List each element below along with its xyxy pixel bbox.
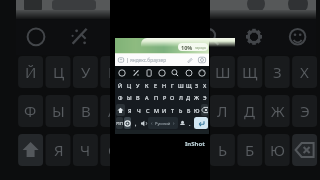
button[interactable]: Emoji bbox=[196, 67, 208, 79]
button[interactable]: Backspace bbox=[201, 104, 208, 116]
staticText: Т bbox=[171, 107, 175, 114]
staticText: Р bbox=[163, 94, 167, 101]
button[interactable]: Ш bbox=[177, 80, 184, 91]
button[interactable]: Я bbox=[126, 104, 134, 116]
staticText: Й bbox=[25, 62, 37, 82]
button[interactable]: Ь bbox=[177, 104, 184, 116]
staticText: У bbox=[136, 82, 140, 89]
staticText: А bbox=[108, 101, 118, 121]
staticText: 10% bbox=[181, 44, 193, 51]
button[interactable]: Б bbox=[185, 104, 192, 116]
staticText: InShot bbox=[185, 140, 205, 148]
staticText: | bbox=[126, 57, 129, 64]
button[interactable]: Е bbox=[152, 80, 160, 91]
staticText: , bbox=[135, 120, 137, 127]
button[interactable]: Р bbox=[161, 92, 168, 103]
staticText: Н bbox=[162, 62, 174, 82]
other: Attach bbox=[186, 57, 193, 64]
button[interactable]: Enter bbox=[194, 117, 208, 129]
button[interactable]: Magic bbox=[130, 67, 142, 79]
staticText: Й bbox=[118, 82, 123, 89]
button[interactable]: Voice assistant bbox=[124, 117, 131, 129]
staticText: Ш bbox=[178, 82, 184, 89]
button[interactable]: Т bbox=[169, 104, 176, 116]
button[interactable]: З bbox=[193, 80, 200, 91]
button[interactable]: Ч bbox=[135, 104, 143, 116]
staticText: В bbox=[81, 101, 91, 121]
button[interactable]: Л bbox=[177, 92, 184, 103]
staticText: Ц bbox=[127, 82, 132, 89]
staticText: Я bbox=[54, 140, 64, 160]
button[interactable]: . bbox=[187, 117, 193, 129]
button[interactable]: Д bbox=[185, 92, 192, 103]
button[interactable]: , bbox=[132, 117, 139, 129]
staticText: Е bbox=[154, 82, 158, 89]
button[interactable]: Ю bbox=[193, 104, 200, 116]
staticText: Щ bbox=[186, 82, 192, 89]
button[interactable]: М bbox=[153, 104, 160, 116]
staticText: Ю bbox=[194, 107, 200, 114]
button[interactable]: Ф bbox=[116, 92, 124, 103]
staticText: яндекс.браузер bbox=[130, 57, 167, 64]
button[interactable]: Language bbox=[140, 117, 147, 129]
staticText: Э bbox=[300, 101, 310, 121]
button[interactable]: О bbox=[169, 92, 176, 103]
button[interactable]: Clipboard bbox=[143, 67, 155, 79]
staticText: Д bbox=[244, 101, 255, 121]
staticText: Н bbox=[162, 82, 167, 89]
staticText: Б bbox=[245, 140, 255, 160]
staticText: Б bbox=[187, 107, 191, 114]
staticText: Т bbox=[191, 140, 200, 160]
staticText: Р bbox=[163, 101, 173, 121]
staticText: Щ bbox=[242, 62, 258, 82]
button[interactable]: П bbox=[152, 92, 160, 103]
button[interactable]: ‹ bbox=[148, 117, 178, 129]
staticText: Ы bbox=[52, 101, 65, 121]
button[interactable]: С bbox=[144, 104, 152, 116]
button[interactable]: Щ bbox=[185, 80, 192, 91]
button[interactable]: И bbox=[161, 104, 168, 116]
other: Tabs bbox=[118, 57, 124, 63]
staticText: заряда bbox=[195, 46, 206, 50]
staticText: Ь bbox=[179, 107, 183, 114]
staticText: Э bbox=[203, 94, 207, 101]
button[interactable]: Translate bbox=[156, 67, 168, 79]
staticText: О bbox=[190, 101, 202, 121]
button[interactable]: Г bbox=[169, 80, 176, 91]
staticText: Ц bbox=[53, 62, 65, 82]
button[interactable]: Ж bbox=[193, 92, 200, 103]
button[interactable]: В bbox=[134, 92, 142, 103]
button[interactable]: Ы bbox=[125, 92, 133, 103]
button[interactable]: Х bbox=[201, 80, 208, 91]
staticText: С bbox=[108, 140, 118, 160]
staticText: Ю bbox=[270, 140, 285, 160]
staticText: Л bbox=[217, 101, 228, 121]
button[interactable]: Ц bbox=[125, 80, 133, 91]
staticText: Х bbox=[300, 62, 309, 82]
button[interactable]: Search bbox=[169, 67, 181, 79]
button[interactable]: А bbox=[143, 92, 151, 103]
staticText: Ч bbox=[80, 140, 91, 160]
staticText: К bbox=[145, 82, 149, 89]
staticText: И bbox=[162, 107, 167, 114]
staticText: Х bbox=[203, 82, 207, 89]
staticText: Ч bbox=[137, 107, 141, 114]
button[interactable]: Й bbox=[116, 80, 124, 91]
button[interactable]: К bbox=[143, 80, 151, 91]
staticText: Л bbox=[179, 94, 183, 101]
staticText: Д bbox=[186, 94, 191, 101]
button[interactable]: Э bbox=[201, 92, 208, 103]
staticText: Г bbox=[192, 62, 200, 82]
staticText: ‹ bbox=[151, 120, 153, 127]
staticText: Ш bbox=[215, 62, 231, 82]
staticText: К bbox=[108, 62, 118, 82]
button[interactable]: Yandex bbox=[116, 67, 128, 79]
staticText: Ь bbox=[218, 140, 228, 160]
button[interactable]: У bbox=[134, 80, 142, 91]
button[interactable]: Assistant bbox=[179, 117, 186, 129]
button[interactable]: Н bbox=[161, 80, 168, 91]
button[interactable]: Settings bbox=[183, 67, 195, 79]
button[interactable]: Shift bbox=[116, 104, 125, 116]
button[interactable]: ?1П bbox=[116, 117, 123, 129]
